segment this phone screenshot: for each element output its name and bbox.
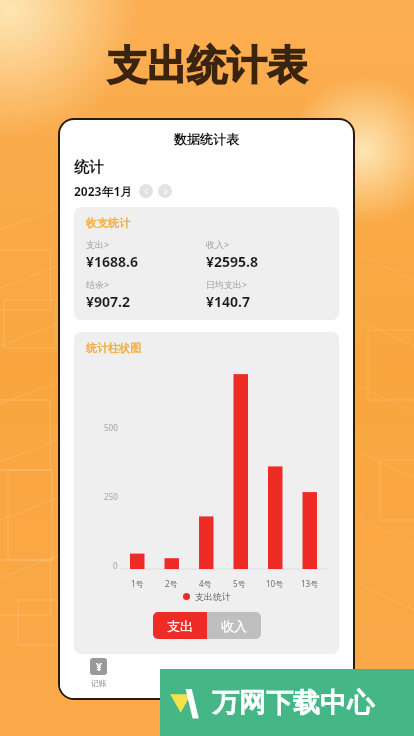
staticText: 2号 bbox=[165, 578, 178, 589]
button[interactable]: 结余> bbox=[86, 278, 206, 311]
staticText: 1号 bbox=[131, 578, 144, 589]
staticText: 收入 bbox=[221, 618, 247, 634]
button[interactable]: 日均支出> bbox=[206, 278, 327, 311]
staticText: ¥140.7 bbox=[206, 292, 250, 311]
staticText: 10号 bbox=[266, 578, 284, 589]
button[interactable]: 收支统计 bbox=[74, 207, 339, 320]
staticText: 13号 bbox=[301, 578, 319, 589]
staticText: 支出统计 bbox=[195, 591, 231, 602]
staticText: 日均支出> bbox=[206, 278, 248, 290]
button[interactable]: 支出> bbox=[86, 238, 206, 271]
staticText: 支出> bbox=[86, 238, 110, 250]
staticText: ¥2595.8 bbox=[206, 252, 258, 271]
button[interactable]: ¥ bbox=[90, 658, 107, 688]
staticText: 统计柱状图 bbox=[86, 341, 141, 355]
button[interactable]: 收入 bbox=[207, 612, 261, 639]
staticText: 记账 bbox=[91, 678, 107, 688]
button[interactable]: 上一月 bbox=[139, 184, 153, 198]
staticText: 数据统计表 bbox=[174, 131, 239, 147]
staticText: ¥ bbox=[96, 660, 102, 674]
staticText: 万网下载中心 bbox=[212, 686, 374, 720]
staticText: 2023年1月 bbox=[74, 183, 133, 199]
staticText: 收支统计 bbox=[86, 216, 130, 230]
staticText: 结余> bbox=[86, 278, 110, 290]
staticText: 500 bbox=[104, 422, 118, 433]
staticText: 支出统计表 bbox=[107, 40, 307, 90]
staticText: 5号 bbox=[233, 578, 246, 589]
staticText: ¥907.2 bbox=[86, 292, 130, 311]
button[interactable]: 收入> bbox=[206, 238, 327, 271]
staticText: 收入> bbox=[206, 238, 230, 250]
button[interactable]: 支出 bbox=[153, 612, 207, 639]
staticText: 支出 bbox=[167, 618, 193, 634]
staticText: 250 bbox=[104, 491, 118, 502]
button[interactable]: 下一月 bbox=[158, 184, 172, 198]
staticText: 0 bbox=[113, 560, 118, 571]
staticText: 4号 bbox=[199, 578, 212, 589]
staticText: 统计 bbox=[74, 158, 104, 177]
staticText: ¥1688.6 bbox=[86, 252, 138, 271]
